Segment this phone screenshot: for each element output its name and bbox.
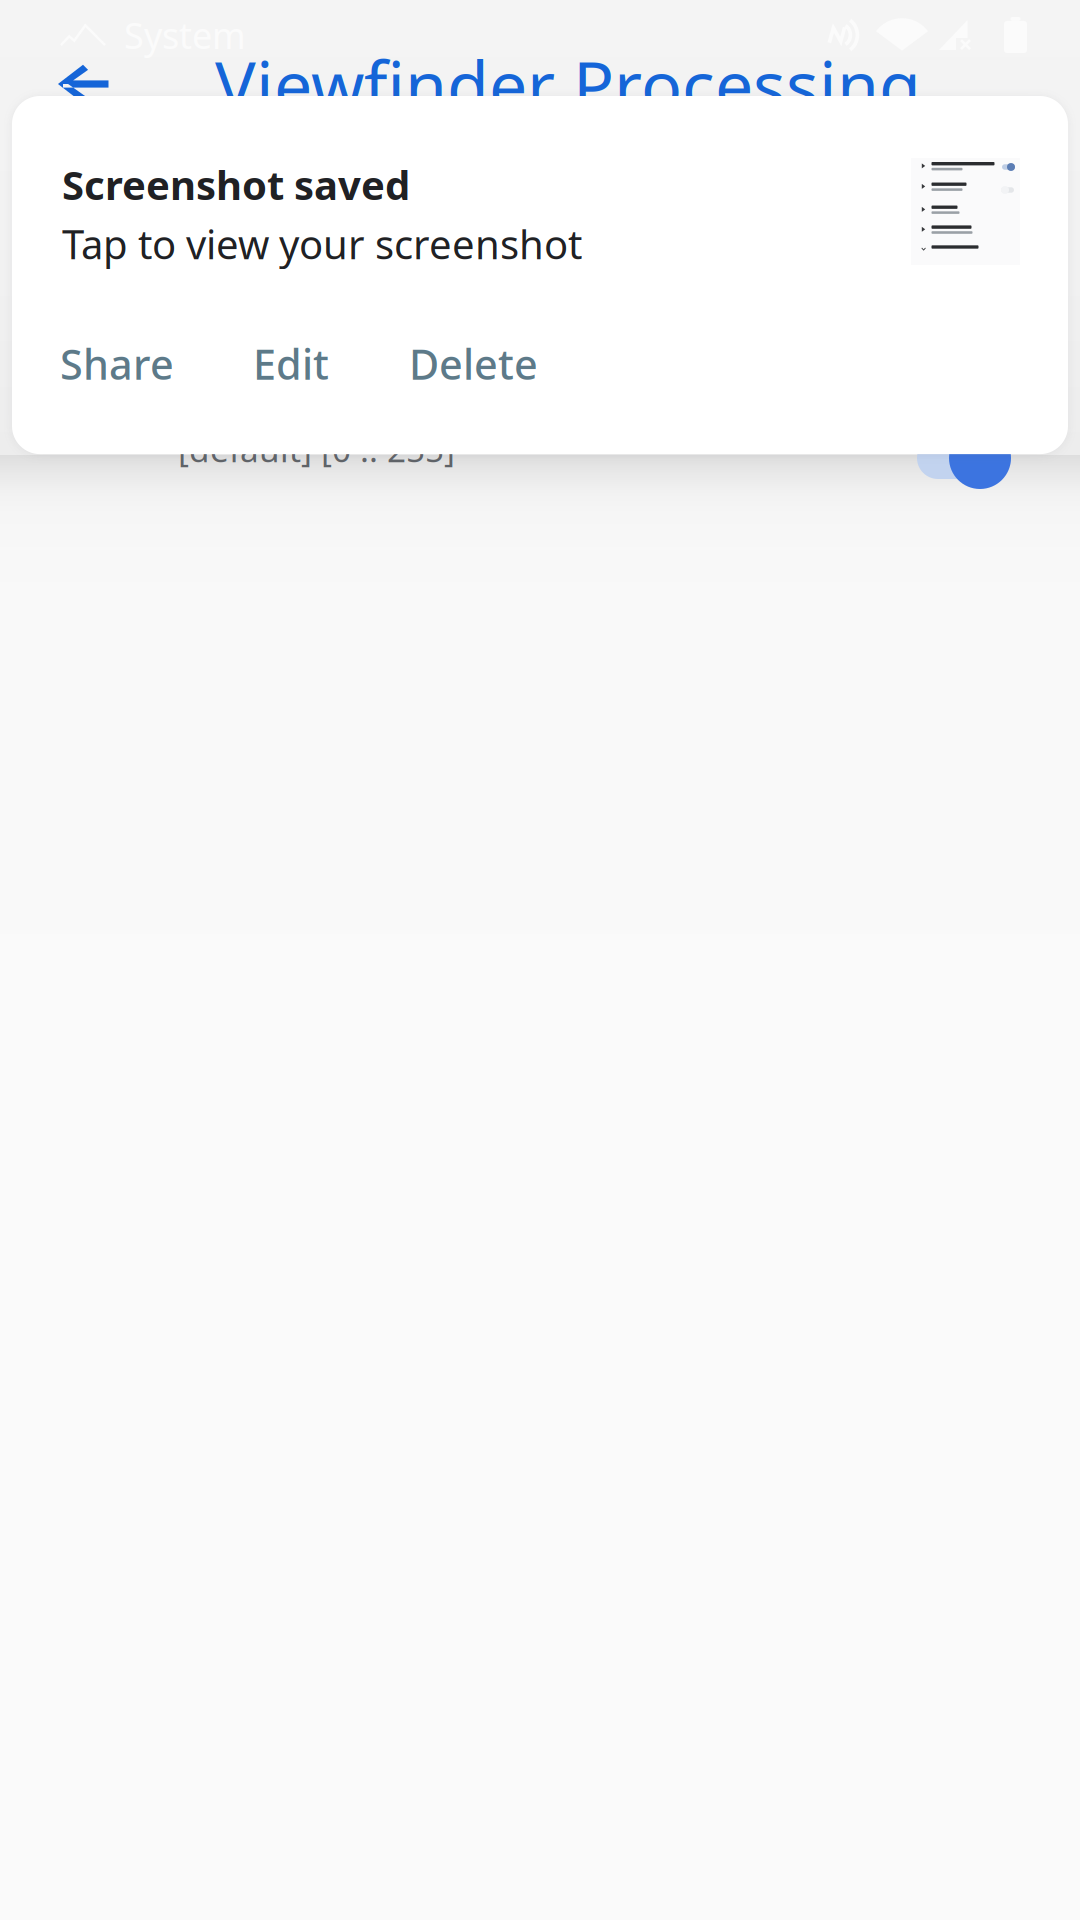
button[interactable]: Share — [38, 316, 196, 411]
staticText: Delete — [409, 336, 538, 391]
staticText: Screenshot saved — [62, 158, 410, 211]
button[interactable]: Back — [37, 41, 133, 127]
staticText: Edit — [253, 336, 329, 391]
staticText: Share — [60, 336, 174, 391]
button[interactable]: Screenshot saved — [12, 96, 1068, 454]
button[interactable]: Edit — [231, 316, 351, 411]
staticText: Tap to view your screenshot — [62, 217, 582, 270]
staticText: Viewfinder Processing — [215, 39, 921, 129]
staticText: Black Level front camera = 75 — [178, 368, 734, 421]
staticText: [default] [0 .. 255] — [178, 427, 455, 471]
button[interactable]: Delete — [387, 316, 560, 411]
